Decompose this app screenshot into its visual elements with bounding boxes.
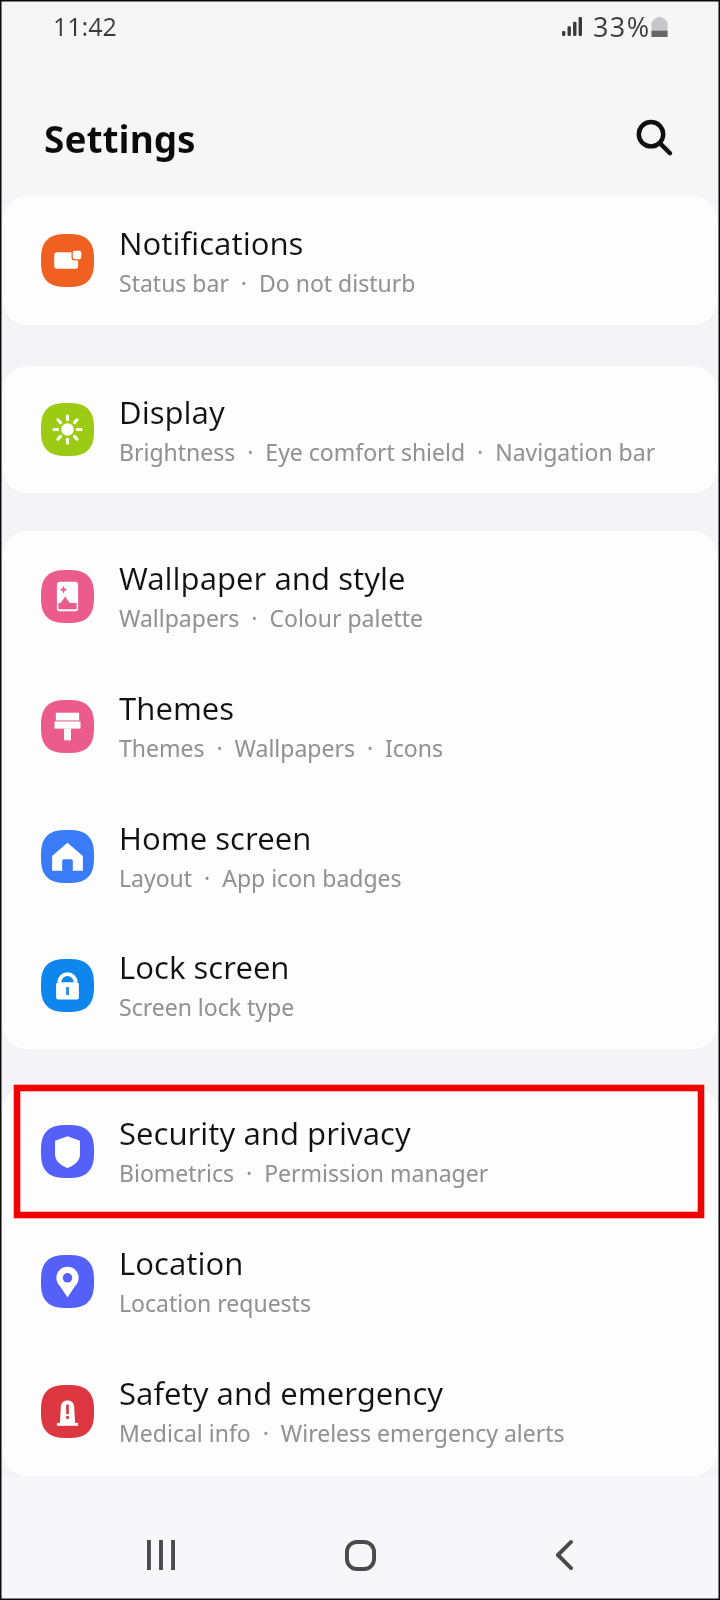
button[interactable]: Back <box>514 1505 614 1600</box>
button[interactable]: Recent apps <box>111 1505 211 1600</box>
button[interactable]: Search <box>625 107 685 167</box>
button[interactable]: Lock screen <box>2 921 718 1049</box>
staticText: Display <box>119 391 225 433</box>
staticText: Brightness · Eye comfort shield · Naviga… <box>119 436 656 467</box>
staticText: Biometrics · Permission manager <box>119 1157 489 1188</box>
staticText: 11:42 <box>53 9 117 43</box>
button[interactable]: Wallpaper and style <box>2 531 718 661</box>
staticText: Notifications <box>119 222 304 264</box>
staticText: Lock screen <box>119 946 290 988</box>
button[interactable]: Safety and emergency <box>2 1346 718 1476</box>
button[interactable]: Home screen <box>2 791 718 921</box>
staticText: 33% <box>593 8 651 45</box>
staticText: Safety and emergency <box>119 1372 444 1414</box>
button[interactable]: Display <box>2 366 718 493</box>
staticText: Location <box>119 1242 244 1284</box>
button[interactable]: Security and privacy <box>2 1086 718 1216</box>
staticText: Wallpapers · Colour palette <box>119 602 423 633</box>
staticText: Themes · Wallpapers · Icons <box>119 732 444 763</box>
staticText: Medical info · Wireless emergency alerts <box>119 1417 565 1448</box>
staticText: Screen lock type <box>119 991 295 1022</box>
button[interactable]: Themes <box>2 661 718 791</box>
staticText: Location requests <box>119 1287 311 1318</box>
staticText: Status bar · Do not disturb <box>119 267 416 298</box>
staticText: Settings <box>44 113 196 163</box>
button[interactable]: Notifications <box>2 196 718 325</box>
staticText: Themes <box>119 687 235 729</box>
staticText: Security and privacy <box>119 1112 411 1154</box>
staticText: Wallpaper and style <box>119 557 406 599</box>
button[interactable]: Location <box>2 1216 718 1346</box>
staticText: Home screen <box>119 817 312 859</box>
staticText: Layout · App icon badges <box>119 862 402 893</box>
button[interactable]: Home <box>310 1505 410 1600</box>
